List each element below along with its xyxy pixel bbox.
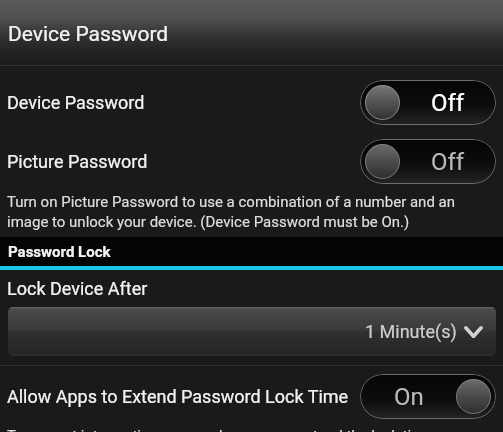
staticText: Off [431, 148, 465, 176]
staticText: Lock Device After [7, 278, 148, 299]
staticText: Password Lock [8, 243, 111, 261]
staticText: To prevent interrupting your work, apps … [7, 427, 437, 432]
button[interactable]: Device Password [0, 0, 503, 65]
button[interactable]: Password Lock [0, 237, 503, 266]
button[interactable]: Allow Apps to Extend Password Lock Time [0, 373, 503, 419]
staticText: Allow Apps to Extend Password Lock Time [7, 386, 349, 407]
button[interactable]: Off [360, 80, 496, 125]
button[interactable]: On [360, 374, 496, 419]
staticText: Device Password [8, 22, 169, 47]
staticText: Off [431, 89, 465, 117]
staticText: On [394, 383, 424, 411]
staticText: Device Password [7, 92, 145, 113]
button[interactable]: Picture Password [0, 138, 503, 184]
staticText: Picture Password [7, 151, 148, 172]
staticText: 1 Minute(s) [365, 321, 457, 342]
button[interactable]: 1 Minute(s) [8, 307, 496, 356]
button[interactable]: Off [360, 139, 496, 184]
staticText: Turn on Picture Password to use a combin… [7, 193, 495, 230]
button[interactable]: Device Password [0, 79, 503, 125]
